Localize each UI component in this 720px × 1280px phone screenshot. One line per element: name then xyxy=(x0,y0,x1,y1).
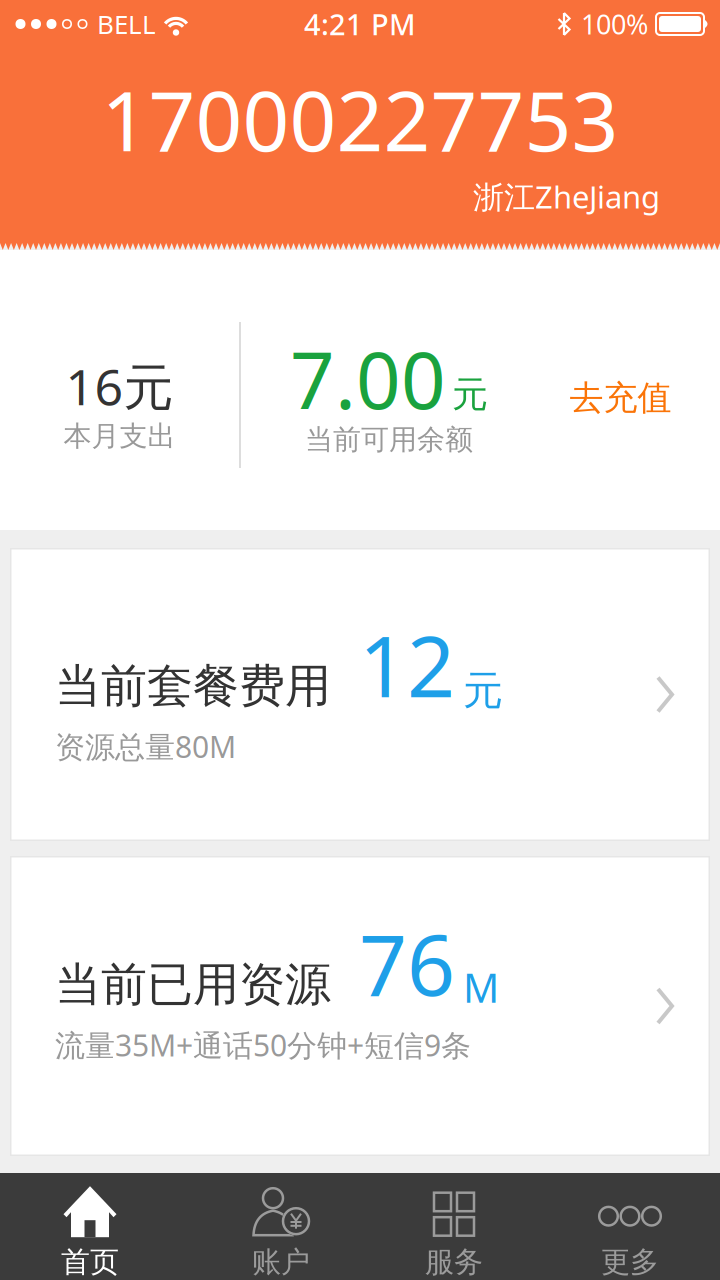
button[interactable]: 服务 xyxy=(360,1173,540,1280)
staticText: 元 xyxy=(452,372,488,417)
button[interactable]: 更多 xyxy=(540,1173,720,1280)
staticText: 16元 xyxy=(65,353,173,419)
staticText: 浙江ZheJiang xyxy=(473,176,660,217)
staticText: 流量35M+通话50分钟+短信9条 xyxy=(55,1025,471,1065)
staticText: BELL xyxy=(97,7,156,41)
staticText: 4:21 PM xyxy=(304,5,416,43)
staticText: 服务 xyxy=(425,1244,483,1280)
staticText: 17000227753 xyxy=(101,65,618,174)
staticText: 7.00 xyxy=(290,327,446,431)
staticText: 本月支出 xyxy=(63,419,175,453)
button[interactable]: 当前套餐费用 xyxy=(10,548,710,841)
button[interactable]: 账户 xyxy=(180,1173,360,1280)
staticText: 76 xyxy=(359,907,455,1019)
button[interactable]: 去充值 xyxy=(521,335,720,445)
button[interactable]: 当前已用资源 xyxy=(10,856,710,1156)
staticText: 元 xyxy=(463,666,503,715)
staticText: 资源总量80M xyxy=(55,726,236,766)
staticText: 首页 xyxy=(61,1244,119,1280)
staticText: 账户 xyxy=(252,1244,310,1280)
staticText: 100% xyxy=(581,6,648,42)
staticText: 去充值 xyxy=(569,377,671,419)
staticText: 当前套餐费用 xyxy=(55,658,331,714)
staticText: M xyxy=(463,961,499,1014)
staticText: 12 xyxy=(359,609,455,720)
staticText: 当前可用余额 xyxy=(305,423,473,457)
staticText: 当前已用资源 xyxy=(55,956,331,1013)
button[interactable]: 首页 xyxy=(0,1173,180,1280)
staticText: 更多 xyxy=(601,1244,659,1280)
